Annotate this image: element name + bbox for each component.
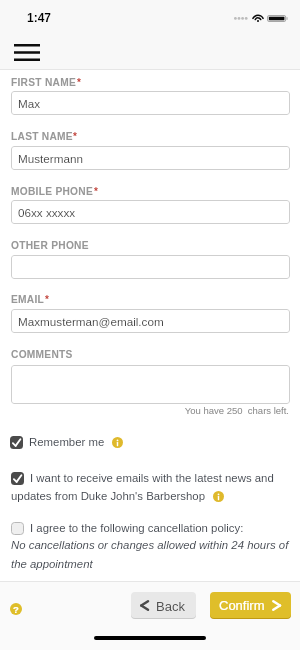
staticText: No cancellations or changes allowed with… (11, 539, 289, 552)
button[interactable]: Remember me (10, 436, 300, 449)
button[interactable]: I want to receive emails with the latest… (0, 472, 300, 503)
staticText: MOBILE PHONE (11, 186, 94, 197)
staticText: Confirm (219, 598, 265, 613)
button[interactable]: 06xx xxxxx (11, 200, 290, 224)
button[interactable] (11, 365, 290, 404)
button[interactable]: Maxmusterman@email.com (11, 309, 290, 333)
button[interactable]: Back (131, 592, 196, 618)
staticText: Max (18, 97, 41, 110)
staticText: EMAIL (11, 294, 45, 305)
staticText: I want to receive emails with the latest… (30, 472, 274, 485)
staticText: * (94, 186, 98, 197)
button[interactable]: Max (11, 91, 290, 115)
staticText: I agree to the following cancellation po… (30, 522, 244, 535)
staticText: ? (13, 604, 19, 615)
button[interactable] (11, 255, 290, 279)
staticText: 1:47 (27, 11, 52, 24)
staticText: OTHER PHONE (11, 240, 89, 251)
staticText: updates from Duke John's Barbershop (11, 490, 206, 503)
staticText: 06xx xxxxx (18, 206, 76, 219)
button[interactable]: Help (10, 603, 22, 615)
staticText: Remember me (29, 436, 105, 449)
button[interactable]: Mustermann (11, 146, 290, 170)
staticText: FIRST NAME (11, 77, 77, 88)
staticText: * (45, 294, 49, 305)
staticText: COMMENTS (11, 349, 73, 360)
staticText: * (73, 131, 77, 142)
staticText: the appointment (11, 558, 93, 571)
button[interactable]: Confirm (210, 592, 291, 618)
staticText: LAST NAME (11, 131, 73, 142)
button[interactable]: Menu (6, 38, 45, 65)
staticText: You have 250 chars left. (0, 405, 289, 416)
button[interactable]: I agree to the following cancellation po… (11, 522, 300, 535)
staticText: Back (156, 599, 185, 614)
staticText: Maxmusterman@email.com (18, 315, 164, 328)
staticText: * (77, 77, 81, 88)
staticText: Mustermann (18, 152, 83, 165)
